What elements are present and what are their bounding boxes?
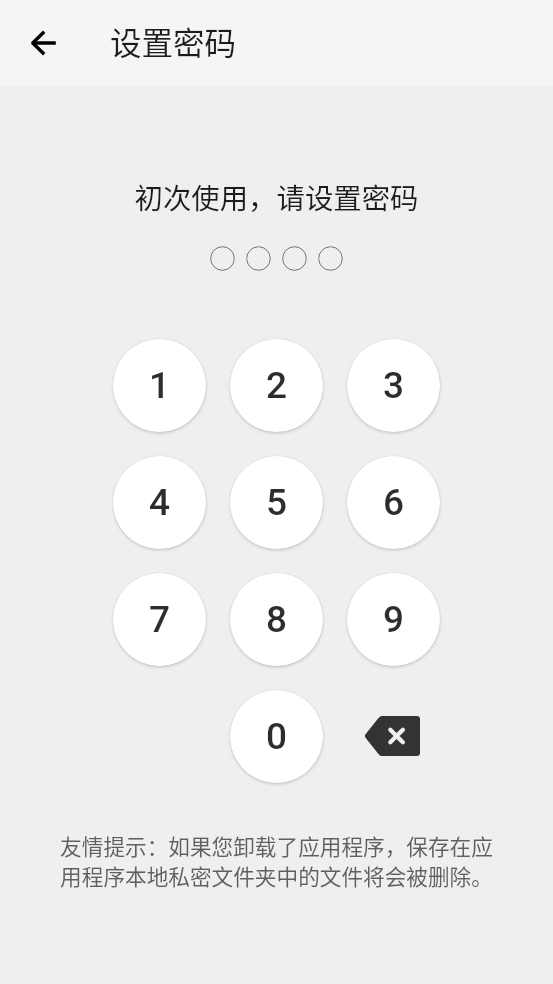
button[interactable]: Back [19,19,67,67]
staticText: 2 [266,364,288,407]
staticText: 初次使用，请设置密码 [0,176,553,217]
button[interactable]: 9 [347,573,440,666]
button[interactable]: 6 [347,456,440,549]
button[interactable]: 2 [230,339,323,432]
staticText: 友情提示：如果您卸载了应用程序，保存在应用程序本地私密文件夹中的文件将会被删除。 [56,830,497,891]
button[interactable]: 1 [113,339,206,432]
staticText: 3 [383,364,405,407]
staticText: 5 [266,481,288,524]
button[interactable]: 7 [113,573,206,666]
button[interactable]: 3 [347,339,440,432]
staticText: 8 [266,598,288,641]
staticText: 7 [149,598,171,641]
staticText: 0 [266,715,288,758]
staticText: 4 [149,481,171,524]
staticText: 1 [149,364,171,407]
button[interactable]: 8 [230,573,323,666]
button[interactable]: 5 [230,456,323,549]
staticText: 设置密码 [110,18,237,64]
staticText: 9 [383,598,405,641]
button[interactable]: 4 [113,456,206,549]
button[interactable]: Delete [347,690,440,783]
button[interactable]: 0 [230,690,323,783]
staticText: 6 [383,481,405,524]
